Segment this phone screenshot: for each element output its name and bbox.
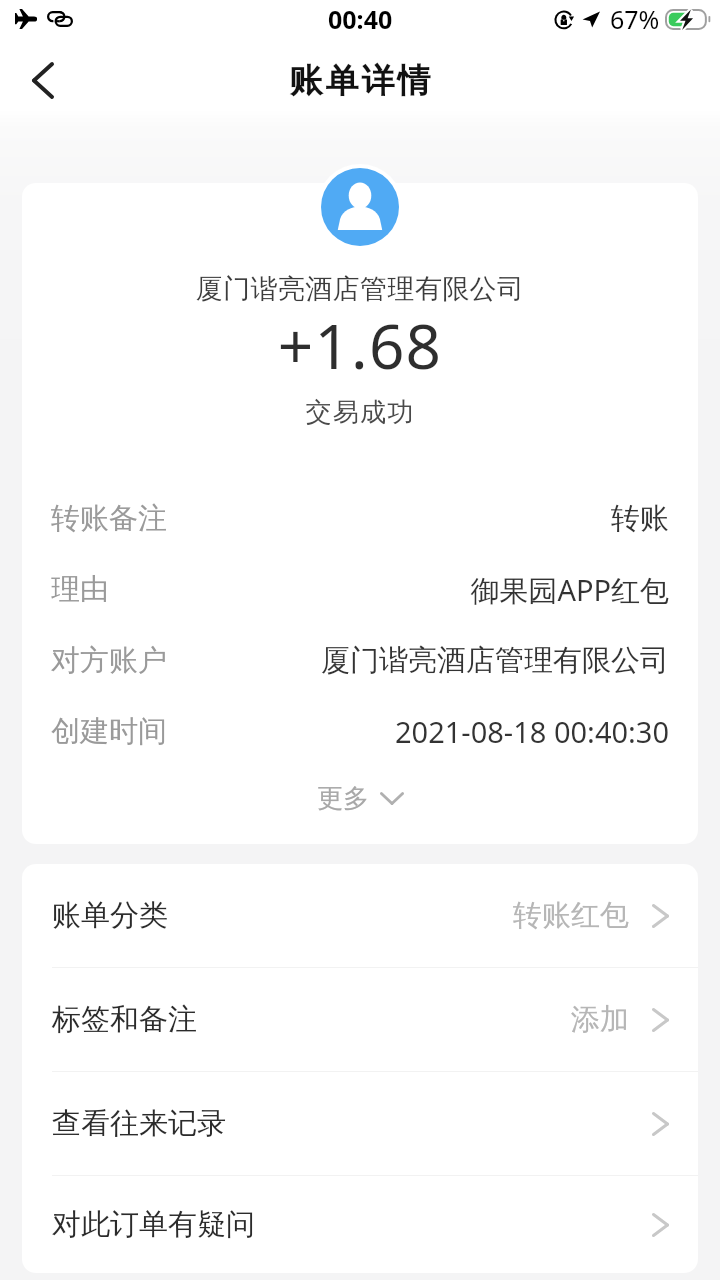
button[interactable]: 标签和备注 (22, 968, 698, 1071)
staticText: +1.68 (22, 303, 698, 377)
staticText: 更多 (317, 782, 369, 815)
button[interactable]: 返回 (11, 48, 75, 112)
staticText: 厦门谐亮酒店管理有限公司 (179, 642, 669, 679)
button[interactable]: 对此订单有疑问 (22, 1176, 698, 1273)
staticText: 转账红包 (513, 897, 629, 934)
staticText: 御果园APP红包 (121, 570, 669, 610)
staticText: 标签和备注 (52, 1001, 197, 1038)
staticText: 账单分类 (52, 897, 168, 934)
staticText: 添加 (571, 1001, 629, 1038)
staticText: 账单详情 (288, 60, 432, 102)
staticText: 转账备注 (51, 500, 167, 537)
staticText: 67% (610, 2, 660, 36)
button[interactable]: 账单分类 (22, 864, 698, 967)
staticText: 交易成功 (22, 396, 698, 429)
button[interactable]: 查看往来记录 (22, 1072, 698, 1175)
staticText: 00:40 (328, 2, 393, 36)
staticText: 对方账户 (51, 642, 167, 679)
button[interactable]: 更多 (22, 767, 698, 829)
staticText: 对此订单有疑问 (52, 1206, 255, 1243)
staticText: 理由 (51, 571, 109, 608)
staticText: 2021-08-18 00:40:30 (179, 712, 669, 751)
staticText: 查看往来记录 (52, 1105, 226, 1142)
staticText: 转账 (179, 500, 669, 537)
staticText: 创建时间 (51, 713, 167, 750)
staticText: 厦门谐亮酒店管理有限公司 (22, 272, 698, 306)
